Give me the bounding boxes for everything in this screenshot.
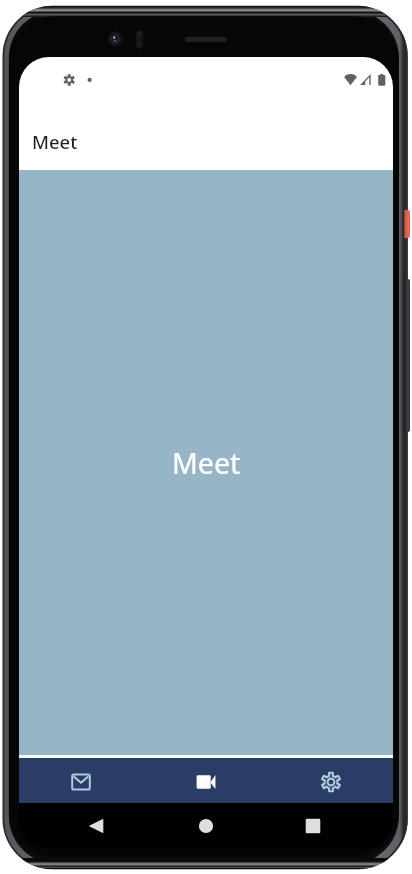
button[interactable]: Mail — [19, 758, 143, 803]
staticText: Meet — [32, 129, 78, 154]
button[interactable]: Back — [74, 803, 118, 849]
button[interactable]: Home — [184, 803, 228, 849]
staticText: Meet — [172, 444, 241, 483]
button[interactable]: Meet — [143, 758, 268, 803]
button[interactable]: Recent apps — [291, 803, 335, 849]
button[interactable]: Settings — [268, 758, 393, 803]
